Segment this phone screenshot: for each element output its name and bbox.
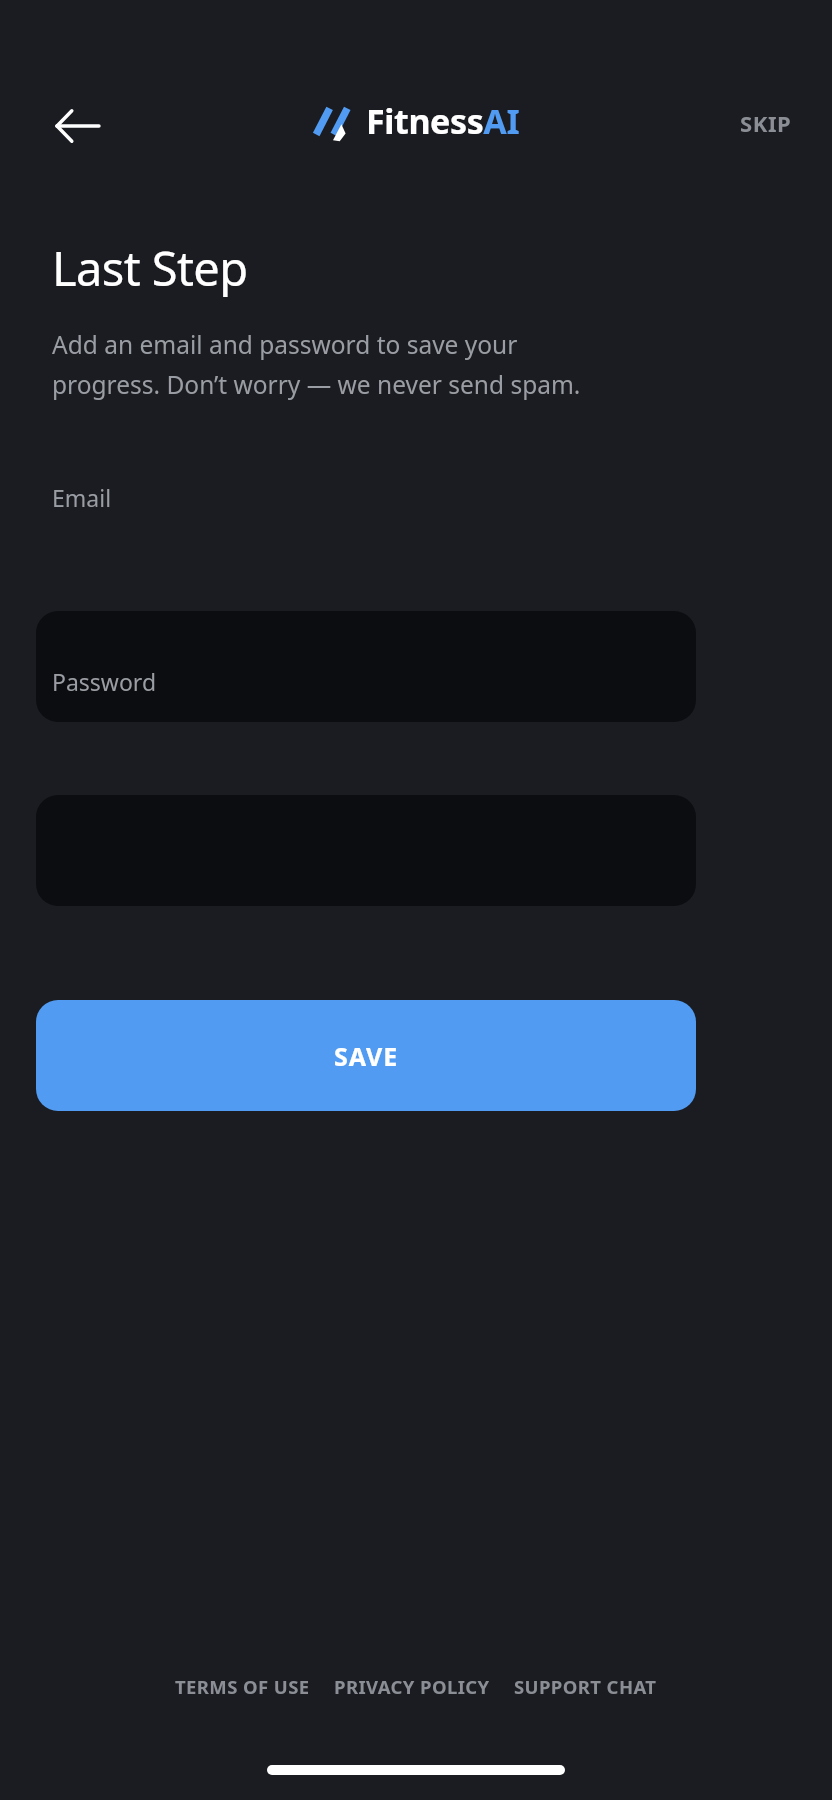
staticText: TERMS OF USE <box>175 1674 310 1699</box>
staticText: SKIP <box>740 108 792 138</box>
button[interactable]: SUPPORT CHAT <box>510 1664 661 1709</box>
button[interactable]: Back <box>40 88 116 164</box>
staticText: FitnessAI <box>366 98 520 144</box>
staticText: SUPPORT CHAT <box>514 1674 657 1699</box>
button[interactable]: SAVE <box>36 1000 696 1111</box>
staticText: PRIVACY POLICY <box>334 1674 490 1699</box>
button[interactable]: SKIP <box>726 96 806 150</box>
staticText: Add an email and password to save your p… <box>52 328 581 401</box>
staticText: SAVE <box>334 1039 399 1073</box>
staticText: Email <box>52 482 112 513</box>
button[interactable]: TERMS OF USE <box>171 1664 314 1709</box>
button[interactable]: PRIVACY POLICY <box>330 1664 494 1709</box>
staticText: Password <box>52 666 157 697</box>
staticText: Last Step <box>52 236 248 300</box>
button[interactable]: Email input <box>36 611 696 722</box>
button[interactable]: FitnessAI <box>312 98 520 144</box>
